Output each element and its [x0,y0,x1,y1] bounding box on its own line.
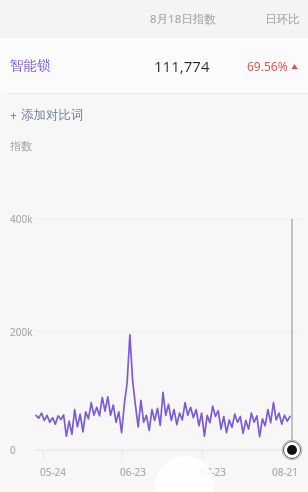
staticText: 0 [10,443,16,457]
button[interactable]: 智能锁 [0,38,308,93]
staticText: + [10,107,17,123]
staticText: 06-23 [116,465,150,479]
staticText: 指数 [10,139,32,153]
staticText: 07-23 [196,465,230,479]
staticText: 添加对比词 [21,107,84,123]
staticText: 08-21 [268,465,302,479]
staticText: 8月18日指数 [150,11,216,27]
staticText: 200k [10,325,33,339]
staticText: 69.56% [247,58,288,74]
staticText: 111,774 [154,56,210,76]
staticText: 400k [10,212,33,226]
staticText: 智能锁 [10,57,51,74]
staticText: 05-24 [36,465,70,479]
button[interactable]: + [0,94,308,136]
staticText: 日环比 [265,12,300,26]
